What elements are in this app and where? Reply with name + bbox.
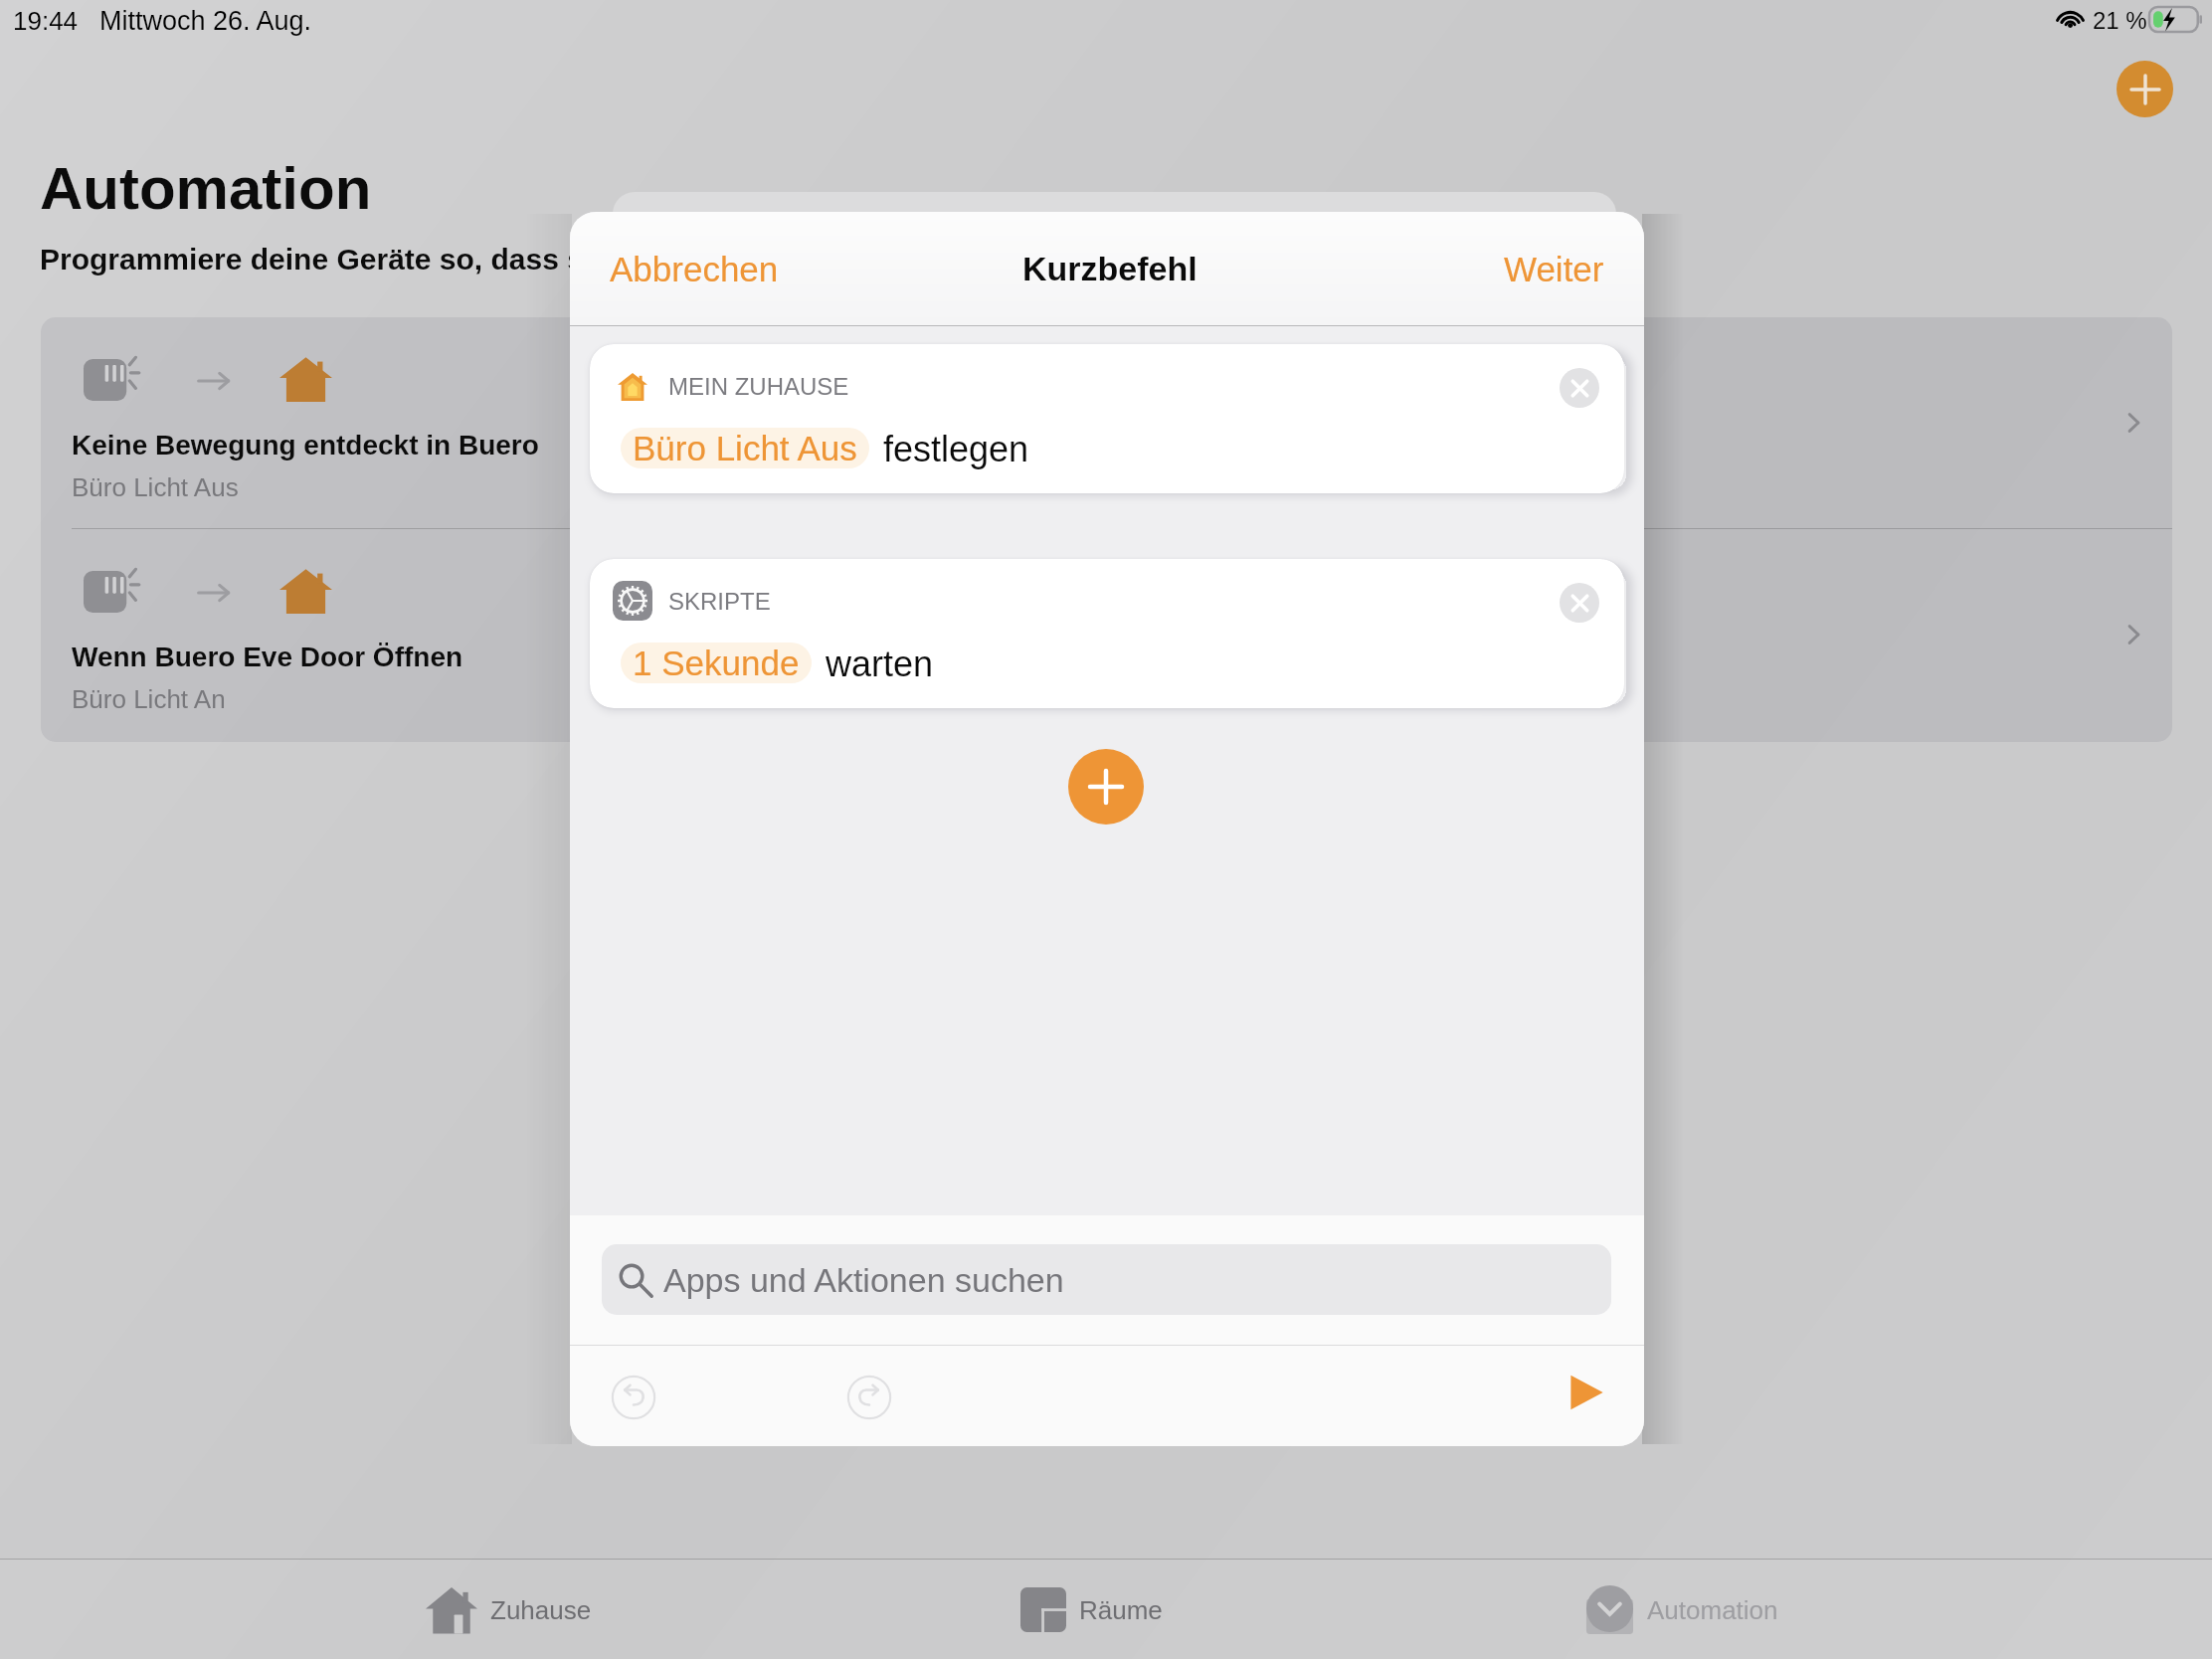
staticText: Keine Bewegung entdeckt in Buero <box>72 430 539 461</box>
staticText: Automation <box>1647 1595 1778 1624</box>
button[interactable]: SKRIPTE <box>590 559 1624 708</box>
button[interactable]: Apps und Aktionen suchen <box>602 1244 1611 1315</box>
staticText: Abbrechen <box>610 250 779 288</box>
staticText: Räume <box>1079 1595 1163 1624</box>
button[interactable]: MEIN ZUHAUSE <box>590 344 1624 493</box>
button[interactable]: Zuhause <box>426 1584 592 1634</box>
button[interactable]: Automation hinzufügen <box>2117 61 2173 117</box>
button[interactable]: Aktion hinzufügen <box>1068 749 1144 825</box>
button[interactable]: Weiter <box>1484 238 1624 300</box>
button[interactable]: Wenn Buero Eve Door Öffnen <box>41 529 2172 741</box>
button[interactable]: Wiederholen <box>847 1376 891 1419</box>
button[interactable]: Automation <box>1585 1584 1778 1634</box>
staticText: MEIN ZUHAUSE <box>668 373 849 400</box>
staticText: Büro Licht Aus <box>633 429 857 467</box>
staticText: Automation <box>40 155 372 222</box>
button[interactable]: Abbrechen <box>590 238 799 300</box>
button[interactable]: Rückgängig <box>612 1376 655 1419</box>
button[interactable]: Aktion entfernen <box>1560 368 1599 408</box>
staticText: Büro Licht Aus <box>72 472 239 501</box>
staticText: SKRIPTE <box>668 588 771 615</box>
staticText: Programmiere deine Geräte so, dass sie <box>40 243 609 276</box>
staticText: 21 % <box>2093 7 2147 34</box>
button[interactable]: Räume <box>1020 1584 1163 1634</box>
staticText: Weiter <box>1504 250 1604 288</box>
staticText: Mittwoch 26. Aug. <box>99 6 312 36</box>
button[interactable]: Kurzbefehl ausführen <box>1569 1375 1603 1410</box>
button[interactable]: Aktion entfernen <box>1560 583 1599 623</box>
staticText: Zuhause <box>490 1595 592 1624</box>
staticText: 1 Sekunde <box>633 644 800 682</box>
button[interactable]: Keine Bewegung entdeckt in Buero <box>41 317 2172 529</box>
staticText: Wenn Buero Eve Door Öffnen <box>72 642 463 672</box>
staticText: Büro Licht An <box>72 684 226 713</box>
staticText: 19:44 <box>13 6 79 35</box>
staticText: Kurzbefehl <box>1022 250 1198 287</box>
staticText: Apps und Aktionen suchen <box>663 1261 1064 1299</box>
staticText: festlegen <box>883 429 1029 468</box>
staticText: warten <box>826 644 934 683</box>
